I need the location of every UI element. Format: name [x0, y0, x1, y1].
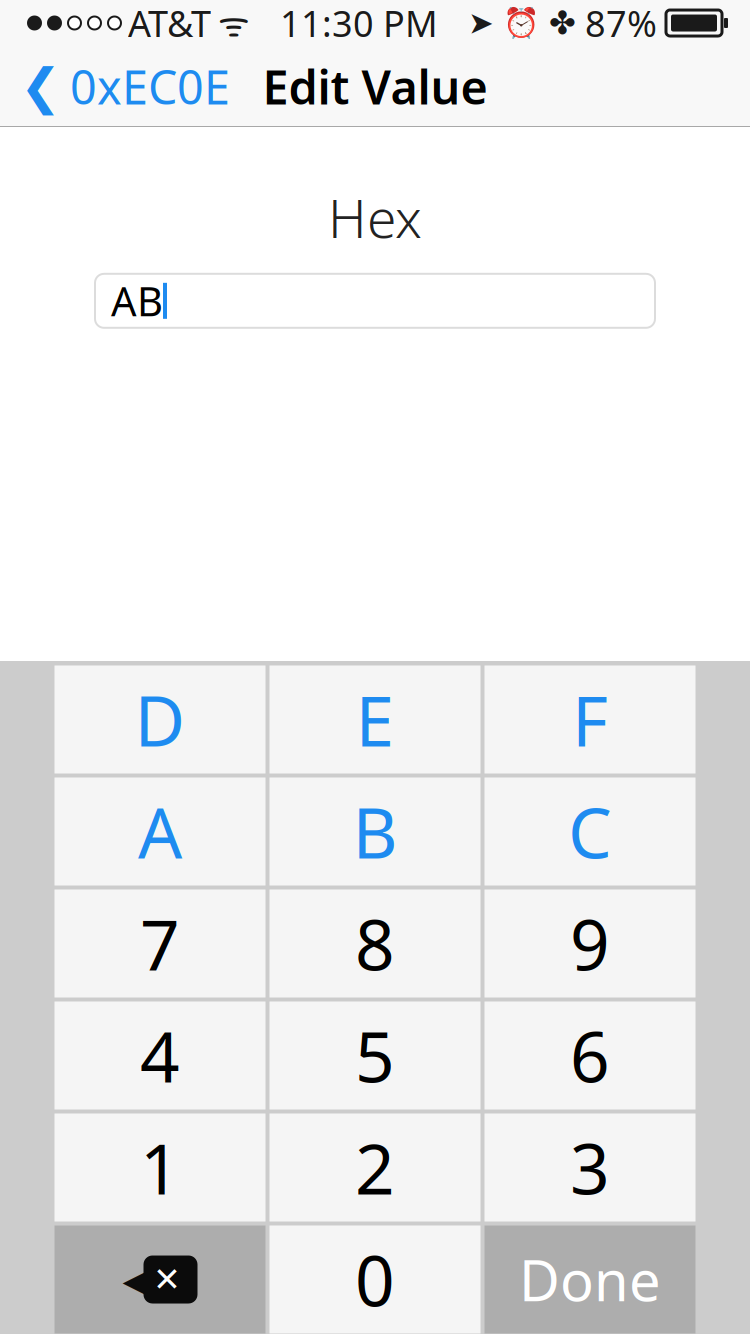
staticText: 0 — [355, 1233, 395, 1326]
button[interactable]: Done — [484, 1225, 695, 1333]
button[interactable]: 4 — [54, 1001, 265, 1109]
button[interactable]: A — [54, 777, 265, 885]
staticText: ◀ — [122, 1254, 157, 1305]
staticText: Hex — [328, 182, 422, 253]
button[interactable]: 2 — [269, 1113, 480, 1221]
staticText: ➤ — [468, 6, 494, 40]
button[interactable]: 7 — [54, 889, 265, 997]
staticText: 1 — [140, 1121, 180, 1214]
staticText: AB — [111, 274, 163, 327]
button[interactable]: 8 — [269, 889, 480, 997]
staticText: 9 — [570, 897, 610, 990]
staticText: F — [572, 673, 608, 766]
button[interactable]: 3 — [484, 1113, 695, 1221]
staticText: 6 — [570, 1009, 610, 1102]
staticText: E — [355, 673, 394, 766]
staticText: 2 — [355, 1121, 395, 1214]
staticText: ✕ — [153, 1261, 181, 1298]
staticText: B — [352, 785, 397, 878]
button[interactable]: 5 — [269, 1001, 480, 1109]
button[interactable]: E — [269, 665, 480, 773]
button[interactable]: D — [54, 665, 265, 773]
staticText: 11:30 PM — [280, 0, 438, 47]
staticText: Done — [519, 1242, 661, 1317]
staticText: C — [568, 785, 612, 878]
button[interactable]: 0 — [269, 1225, 480, 1333]
staticText: ⏰ — [503, 6, 540, 40]
staticText: 8 — [355, 897, 395, 990]
button[interactable]: B — [269, 777, 480, 885]
button[interactable]: ❮ — [0, 45, 230, 127]
staticText: ✤ — [549, 5, 576, 41]
staticText: 3 — [570, 1121, 610, 1214]
staticText: ᯤ — [218, 0, 250, 46]
button[interactable]: 6 — [484, 1001, 695, 1109]
staticText: 4 — [140, 1009, 180, 1102]
staticText: 5 — [355, 1009, 395, 1102]
button[interactable]: Delete — [54, 1225, 265, 1333]
staticText: Edit Value — [262, 55, 487, 117]
button[interactable]: 9 — [484, 889, 695, 997]
staticText: A — [138, 785, 182, 878]
button[interactable]: C — [484, 777, 695, 885]
staticText: 0xEC0E — [70, 55, 230, 117]
staticText: ❮ — [20, 58, 61, 114]
staticText: D — [134, 673, 185, 766]
staticText: 7 — [140, 897, 180, 990]
button[interactable]: F — [484, 665, 695, 773]
button[interactable]: 1 — [54, 1113, 265, 1221]
staticText: 87% — [585, 0, 657, 47]
staticText: AT&T — [128, 0, 211, 47]
